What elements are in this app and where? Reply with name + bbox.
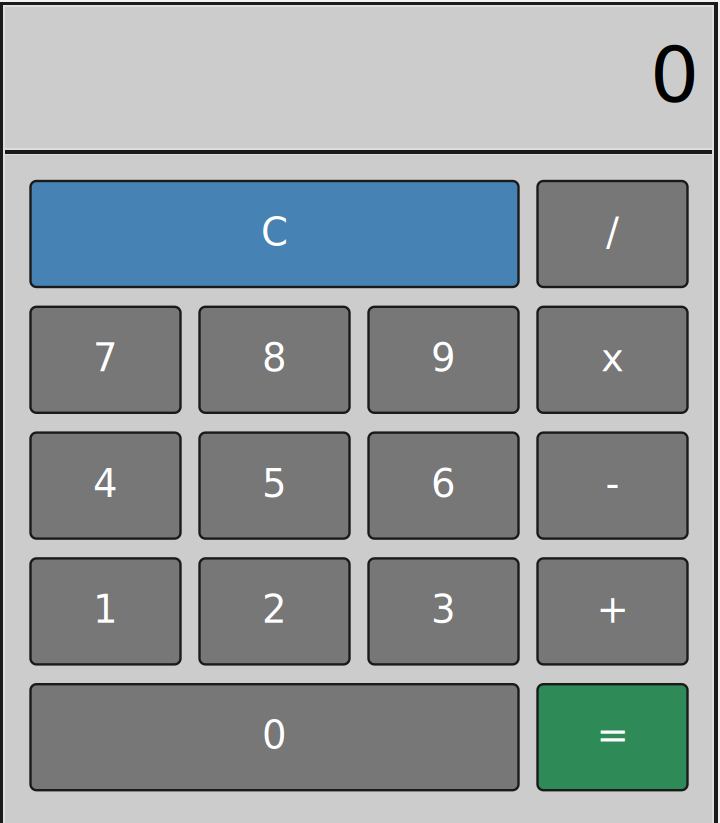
button[interactable]: 9 bbox=[368, 307, 518, 413]
button[interactable]: Multiply bbox=[537, 307, 687, 413]
staticText: + bbox=[596, 587, 628, 632]
staticText: 7 bbox=[93, 335, 118, 380]
staticText: 0 bbox=[650, 30, 699, 120]
button[interactable]: Minus bbox=[537, 433, 687, 539]
staticText: = bbox=[596, 713, 628, 758]
button[interactable]: 5 bbox=[199, 433, 349, 539]
staticText: x bbox=[601, 335, 624, 380]
staticText: 4 bbox=[93, 461, 118, 506]
button[interactable]: Divide bbox=[537, 181, 687, 287]
staticText: 2 bbox=[262, 587, 287, 632]
button[interactable]: 7 bbox=[30, 307, 180, 413]
staticText: 5 bbox=[262, 461, 287, 506]
button[interactable]: 4 bbox=[30, 433, 180, 539]
staticText: 8 bbox=[262, 335, 287, 380]
staticText: 6 bbox=[431, 461, 456, 506]
staticText: 1 bbox=[93, 587, 118, 632]
button[interactable]: 2 bbox=[199, 558, 349, 664]
button[interactable]: Plus bbox=[537, 558, 687, 664]
button[interactable]: 0 bbox=[30, 684, 518, 790]
button[interactable]: 8 bbox=[199, 307, 349, 413]
button[interactable]: Clear bbox=[30, 181, 518, 287]
button[interactable]: 1 bbox=[30, 558, 180, 664]
staticText: / bbox=[606, 209, 619, 254]
staticText: C bbox=[261, 209, 288, 254]
button[interactable]: Equals bbox=[537, 684, 687, 790]
button[interactable]: 6 bbox=[368, 433, 518, 539]
staticText: - bbox=[605, 461, 619, 506]
staticText: 9 bbox=[431, 335, 456, 380]
staticText: 3 bbox=[431, 587, 456, 632]
staticText: 0 bbox=[262, 713, 287, 758]
button[interactable]: 3 bbox=[368, 558, 518, 664]
